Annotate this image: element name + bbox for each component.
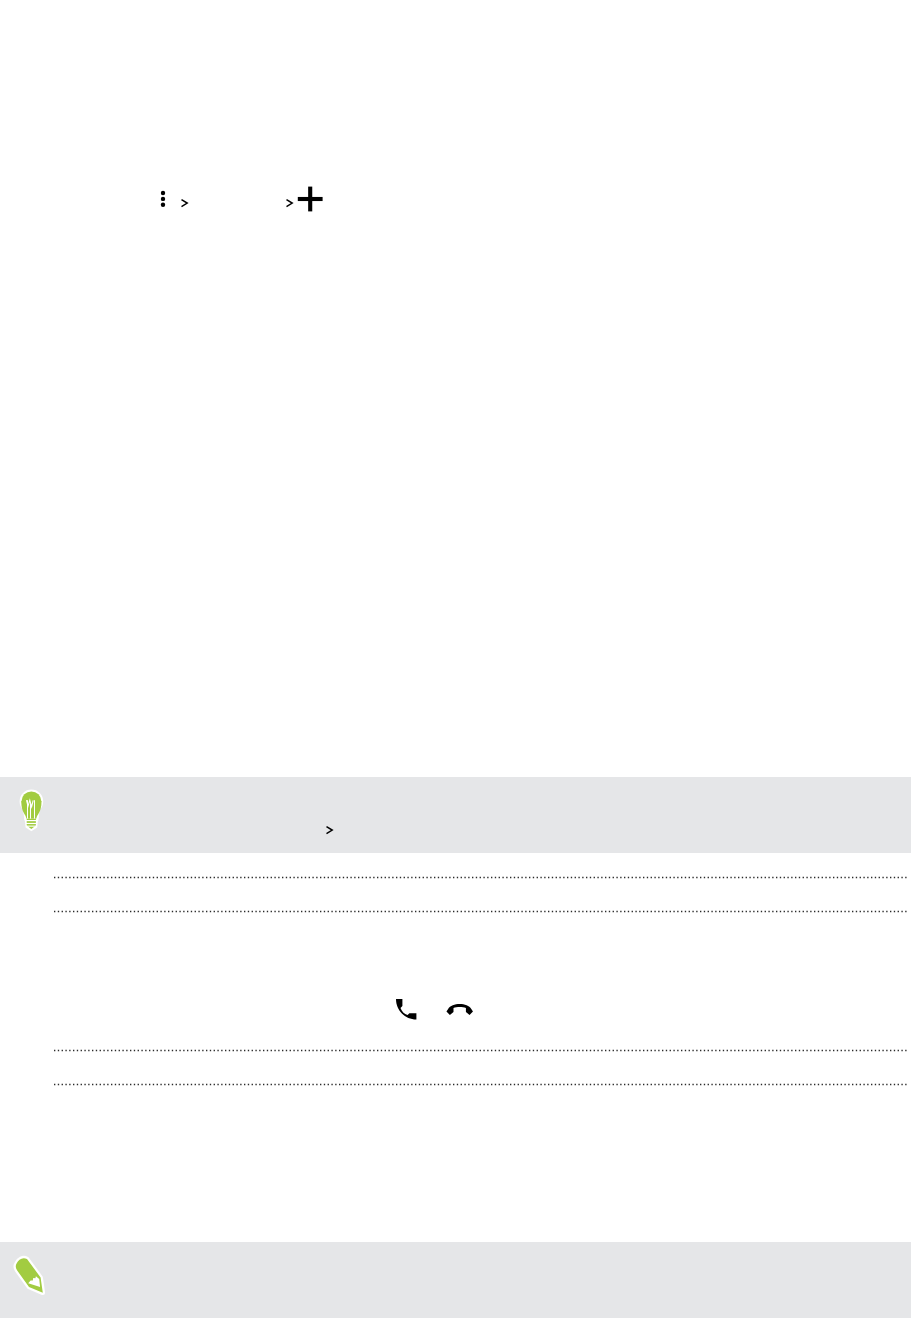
button[interactable]: End call — [445, 1000, 474, 1018]
button[interactable]: More options — [157, 187, 170, 211]
button[interactable]: Add — [296, 185, 325, 214]
button[interactable]: Call — [393, 996, 417, 1020]
button[interactable]: Note — [0, 1242, 911, 1318]
button[interactable]: Tip — [0, 777, 911, 853]
